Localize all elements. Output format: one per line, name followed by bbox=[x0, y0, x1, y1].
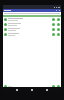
button[interactable] bbox=[3, 17, 61, 22]
button[interactable] bbox=[3, 22, 61, 27]
button[interactable] bbox=[3, 27, 61, 32]
button[interactable] bbox=[3, 32, 61, 37]
button[interactable] bbox=[3, 84, 61, 88]
